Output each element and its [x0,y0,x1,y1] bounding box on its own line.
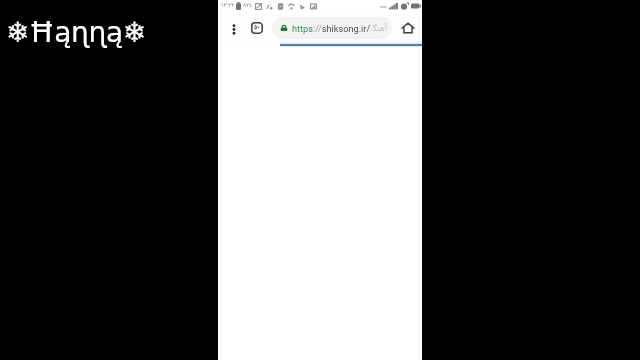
button[interactable]: Switch tabs [246,14,268,42]
button[interactable]: More options [223,14,245,42]
button[interactable]: https://shiksong.ir/آهنگ [272,17,392,39]
staticText: https://shiksong.ir/آهنگ [292,22,387,35]
button[interactable]: Home [397,15,419,41]
staticText: ۸۲٪ [243,1,252,11]
staticText: ۵۰ [254,23,260,33]
staticText: ۱۳:۲۲ [221,1,234,11]
staticText: ❄Ħąɳɳą❄ [6,16,146,49]
